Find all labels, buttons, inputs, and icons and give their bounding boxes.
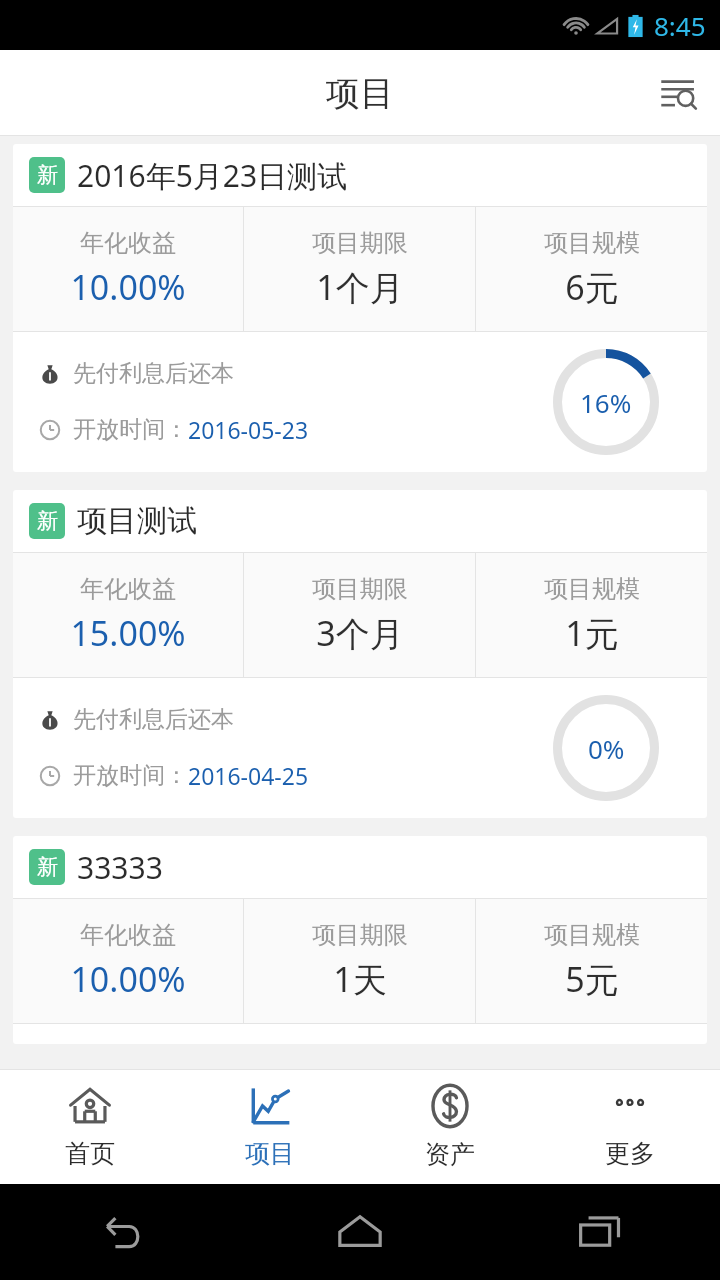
staticText: 先付利息后还本: [73, 705, 234, 734]
button[interactable]: 首页: [0, 1069, 180, 1184]
staticText: 开放时间：: [73, 415, 188, 444]
button[interactable]: 项目: [180, 1069, 360, 1184]
staticText: 新: [37, 162, 58, 188]
staticText: 项目期限: [312, 228, 408, 258]
button[interactable]: Recent apps: [570, 1202, 630, 1262]
staticText: 16%: [580, 385, 632, 420]
button[interactable]: Back: [90, 1202, 150, 1262]
staticText: 8:45: [654, 8, 706, 43]
staticText: 2016-04-25: [188, 760, 309, 791]
staticText: 更多: [605, 1138, 655, 1169]
staticText: 1个月: [316, 264, 404, 310]
button[interactable]: 新: [13, 836, 707, 1044]
staticText: 新: [37, 854, 58, 880]
staticText: 项目规模: [544, 574, 640, 604]
staticText: 项目期限: [312, 920, 408, 950]
button[interactable]: 新: [13, 490, 707, 818]
staticText: 项目测试: [77, 502, 197, 540]
staticText: 3个月: [316, 610, 404, 656]
staticText: 年化收益: [80, 920, 176, 950]
staticText: 年化收益: [80, 228, 176, 258]
staticText: 项目: [326, 72, 394, 115]
staticText: 33333: [77, 847, 163, 888]
staticText: 首页: [65, 1138, 115, 1169]
staticText: 项目规模: [544, 920, 640, 950]
staticText: 2016-05-23: [188, 414, 309, 445]
staticText: 年化收益: [80, 574, 176, 604]
staticText: 0%: [588, 731, 625, 766]
staticText: 项目规模: [544, 228, 640, 258]
staticText: 项目: [245, 1138, 295, 1169]
button[interactable]: Home: [330, 1202, 390, 1262]
button[interactable]: 资产: [360, 1069, 540, 1184]
staticText: 新: [37, 508, 58, 534]
staticText: 15.00%: [70, 610, 186, 656]
staticText: 开放时间：: [73, 761, 188, 790]
staticText: 5元: [565, 956, 619, 1002]
staticText: 10.00%: [70, 956, 186, 1002]
staticText: 2016年5月23日测试: [77, 155, 348, 196]
staticText: 1元: [565, 610, 619, 656]
button[interactable]: 新: [13, 144, 707, 472]
staticText: 先付利息后还本: [73, 359, 234, 388]
button[interactable]: 更多: [540, 1069, 720, 1184]
staticText: 10.00%: [70, 264, 186, 310]
staticText: 1天: [333, 956, 387, 1002]
staticText: 6元: [565, 264, 619, 310]
staticText: 项目期限: [312, 574, 408, 604]
staticText: 资产: [425, 1139, 475, 1170]
button[interactable]: Search filter: [650, 65, 706, 121]
